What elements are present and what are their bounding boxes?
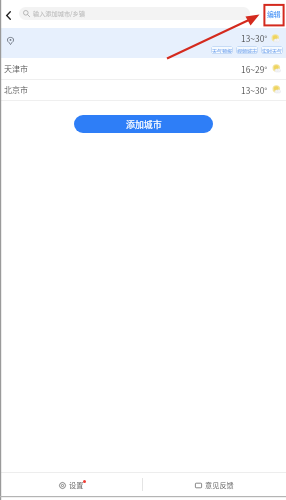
staticText: 视频城市 xyxy=(237,47,258,54)
staticText: 16~29° xyxy=(241,63,268,75)
button[interactable]: 13~30° xyxy=(0,28,286,58)
staticText: 北京市 xyxy=(4,84,28,96)
staticText: 13~30° xyxy=(241,32,268,44)
button[interactable]: Back xyxy=(0,3,16,26)
button[interactable]: 天津市 xyxy=(0,58,286,79)
staticText: 设置 xyxy=(69,480,84,490)
staticText: 13~30° xyxy=(241,84,268,96)
staticText: 意见反馈 xyxy=(205,480,234,490)
staticText: 编辑 xyxy=(267,9,281,19)
staticText: 输入添加城市/乡镇 xyxy=(33,9,85,18)
button[interactable]: 添加城市 xyxy=(74,115,213,133)
button[interactable]: 意见反馈 xyxy=(143,473,286,496)
button[interactable]: 设置 xyxy=(0,473,142,496)
button[interactable]: 北京市 xyxy=(0,79,286,100)
button[interactable]: 输入添加城市/乡镇 xyxy=(19,7,250,20)
staticText: 天气预报 xyxy=(212,47,233,54)
staticText: 天津市 xyxy=(4,63,28,75)
staticText: 添加城市 xyxy=(126,118,162,131)
button[interactable]: 编辑 xyxy=(262,3,285,25)
staticText: 实时天气 xyxy=(262,47,283,54)
